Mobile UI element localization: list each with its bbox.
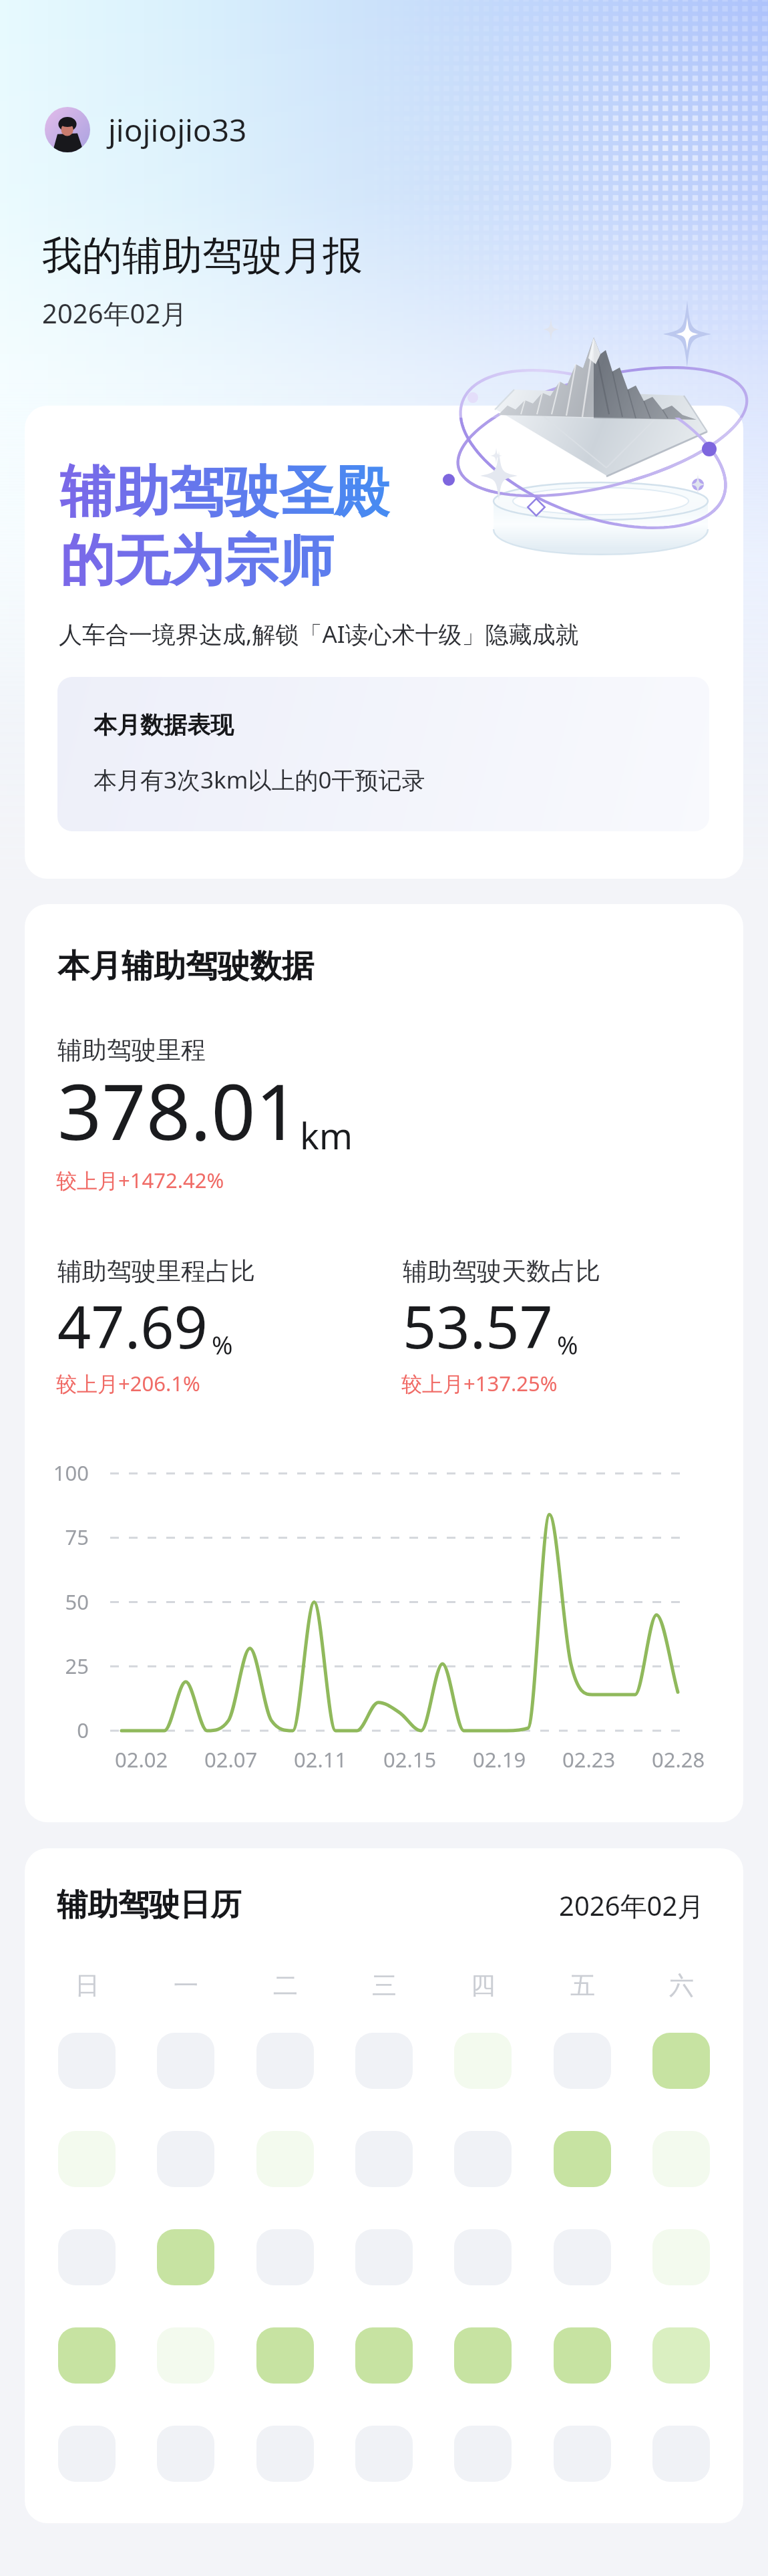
button[interactable]	[652, 2131, 710, 2187]
button[interactable]	[554, 2229, 611, 2285]
staticText: 四	[471, 1970, 496, 2001]
button[interactable]	[355, 2033, 413, 2089]
staticText: 一	[174, 1970, 198, 2001]
staticText: 378.01	[57, 1057, 300, 1163]
staticText: 50	[25, 1588, 89, 1616]
button[interactable]	[355, 2327, 413, 2384]
staticText: 辅助驾驶天数占比	[403, 1256, 600, 1287]
button[interactable]	[454, 2229, 512, 2285]
button[interactable]	[454, 2327, 512, 2384]
button[interactable]	[58, 2033, 116, 2089]
button[interactable]	[355, 2426, 413, 2482]
staticText: 人车合一境界达成,解锁「AI读心术十级」隐藏成就	[59, 618, 579, 650]
button[interactable]	[58, 2229, 116, 2285]
button[interactable]	[652, 2229, 710, 2285]
staticText: 三	[372, 1970, 397, 2001]
button[interactable]	[256, 2426, 314, 2482]
staticText: %	[557, 1327, 578, 1362]
staticText: 02.11	[294, 1745, 347, 1773]
staticText: 47.69	[57, 1286, 208, 1366]
staticText: 二	[273, 1970, 298, 2001]
other: Achievement crystal mountain	[414, 301, 768, 615]
staticText: km	[300, 1111, 353, 1160]
staticText: 辅助驾驶里程占比	[57, 1256, 255, 1287]
staticText: 较上月+137.25%	[401, 1369, 558, 1397]
staticText: 辅助驾驶圣殿	[60, 458, 389, 527]
button[interactable]	[157, 2131, 214, 2187]
staticText: 较上月+206.1%	[56, 1369, 200, 1397]
button[interactable]: jiojiojio33	[45, 107, 247, 152]
button[interactable]	[454, 2131, 512, 2187]
staticText: 25	[25, 1652, 89, 1680]
staticText: 我的辅助驾驶月报	[42, 231, 363, 281]
staticText: 日	[75, 1970, 100, 2001]
staticText: 辅助驾驶日历	[57, 1886, 241, 1924]
staticText: 六	[669, 1970, 694, 2001]
staticText: 02.28	[652, 1745, 705, 1773]
button[interactable]	[652, 2426, 710, 2482]
staticText: 2026年02月	[559, 1887, 705, 1924]
staticText: jiojiojio33	[108, 109, 247, 151]
button[interactable]	[256, 2229, 314, 2285]
button[interactable]	[256, 2033, 314, 2089]
staticText: 75	[25, 1523, 89, 1551]
button[interactable]	[157, 2426, 214, 2482]
button[interactable]	[157, 2327, 214, 2384]
staticText: 本月辅助驾驶数据	[57, 946, 314, 986]
staticText: 53.57	[403, 1286, 553, 1366]
button[interactable]	[652, 2033, 710, 2089]
staticText: 02.23	[562, 1745, 616, 1773]
staticText: 本月有3次3km以上的0干预记录	[93, 764, 425, 796]
staticText: 辅助驾驶里程	[57, 1034, 206, 1066]
staticText: 02.15	[383, 1745, 437, 1773]
button[interactable]	[256, 2327, 314, 2384]
button[interactable]	[454, 2033, 512, 2089]
staticText: 2026年02月	[42, 295, 188, 331]
button[interactable]	[554, 2131, 611, 2187]
button[interactable]	[58, 2327, 116, 2384]
button[interactable]	[554, 2033, 611, 2089]
staticText: 0	[25, 1716, 89, 1744]
staticText: 02.02	[115, 1745, 168, 1773]
staticText: 五	[570, 1970, 595, 2001]
staticText: 02.07	[204, 1745, 258, 1773]
button[interactable]	[652, 2327, 710, 2384]
staticText: 本月数据表现	[93, 710, 234, 740]
button[interactable]	[58, 2426, 116, 2482]
button[interactable]	[454, 2426, 512, 2482]
button[interactable]	[157, 2033, 214, 2089]
button[interactable]	[58, 2131, 116, 2187]
staticText: 02.19	[473, 1745, 526, 1773]
staticText: %	[212, 1327, 233, 1362]
button[interactable]	[554, 2327, 611, 2384]
staticText: 100	[25, 1459, 89, 1487]
button[interactable]	[256, 2131, 314, 2187]
button[interactable]	[355, 2229, 413, 2285]
staticText: 较上月+1472.42%	[56, 1166, 224, 1194]
staticText: 的无为宗师	[60, 527, 334, 595]
button[interactable]	[355, 2131, 413, 2187]
button[interactable]	[157, 2229, 214, 2285]
button[interactable]	[554, 2426, 611, 2482]
